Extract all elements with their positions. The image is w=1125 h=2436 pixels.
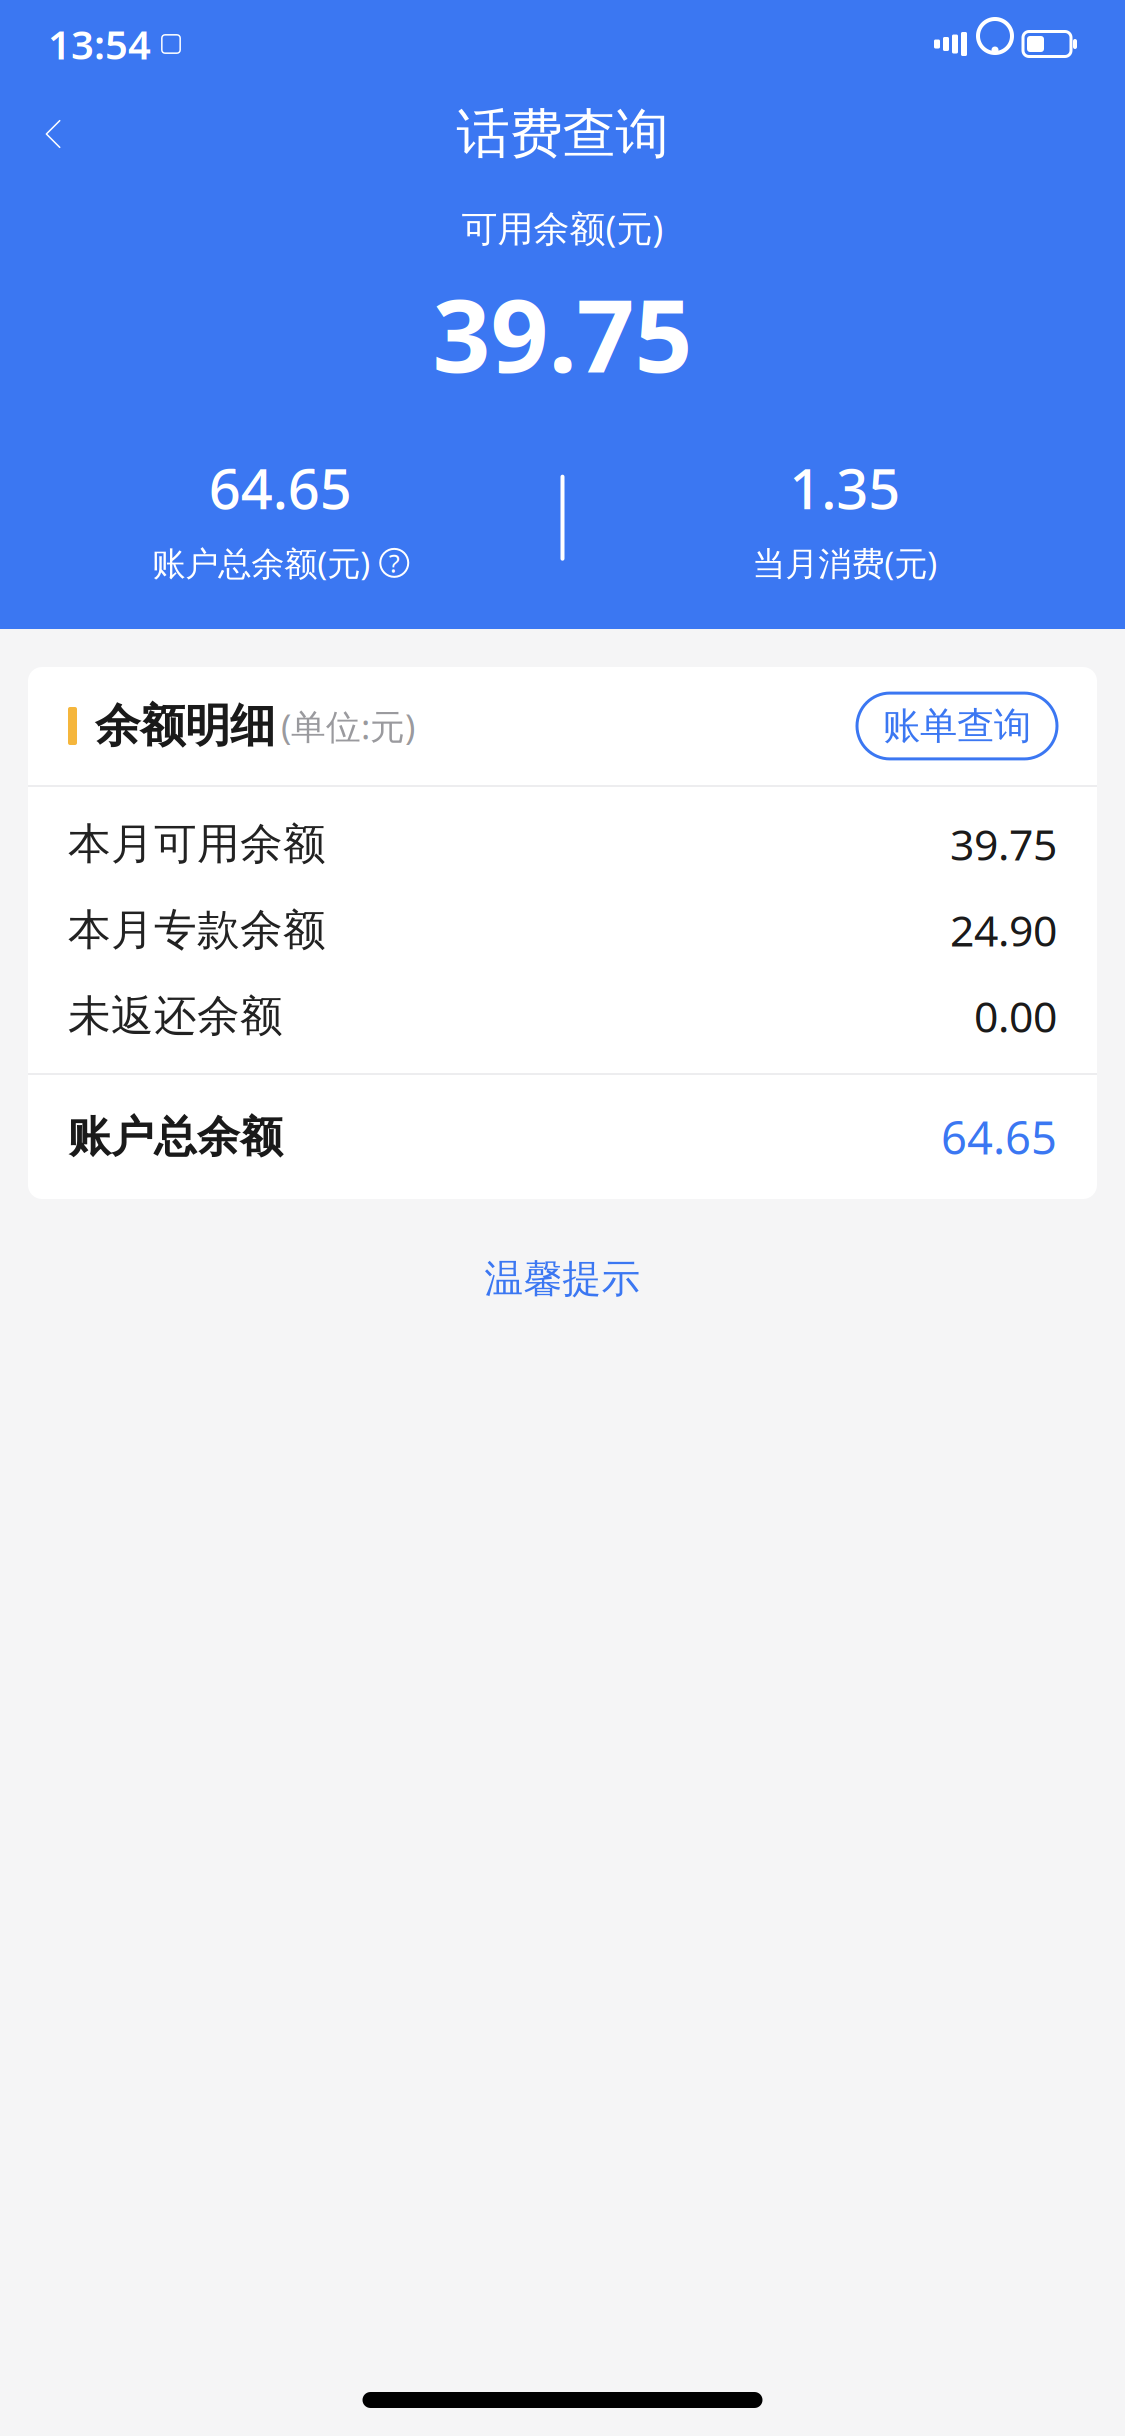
button[interactable]: 温馨提示 <box>454 1241 670 1316</box>
staticText: 未返还余额 <box>68 990 283 1042</box>
staticText: 话费查询 <box>456 101 668 167</box>
staticText: 64.65 <box>209 450 352 525</box>
staticText: 账户总余额(元) <box>152 541 370 585</box>
button[interactable]: 账单查询 <box>857 693 1057 759</box>
staticText: 温馨提示 <box>484 1255 640 1302</box>
staticText: 1.35 <box>789 450 900 525</box>
staticText: 本月可用余额 <box>68 818 326 870</box>
staticText: 39.75 <box>432 266 692 400</box>
staticText: 24.90 <box>950 902 1057 958</box>
staticText: 账单查询 <box>883 703 1031 749</box>
button[interactable]: Back <box>10 90 98 178</box>
staticText: 本月专款余额 <box>68 904 326 956</box>
staticText: 64.65 <box>941 1107 1057 1167</box>
staticText: (单位:元) <box>281 703 415 749</box>
staticText: 39.75 <box>950 816 1057 872</box>
staticText: 余额明细 <box>95 698 275 754</box>
staticText: 可用余额(元) <box>461 204 663 252</box>
staticText: 账户总余额 <box>68 1111 283 1163</box>
staticText: ? <box>389 546 400 580</box>
staticText: 当月消费(元) <box>752 541 937 585</box>
staticText: 0.00 <box>974 988 1057 1044</box>
staticText: 13:54 <box>48 17 151 70</box>
